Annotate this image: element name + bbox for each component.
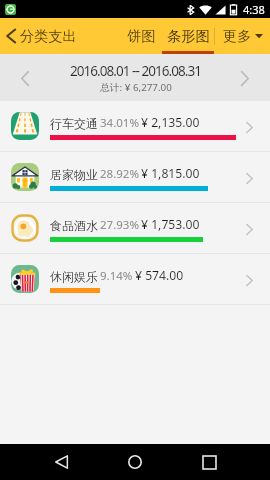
staticText: 9.14% [100,268,133,284]
staticText: 28.92% [100,166,139,182]
staticText: 行车交通 [50,116,98,131]
staticText: 2016.08.01 -- 2016.08.31 [70,62,201,80]
button[interactable]: Back [46,447,76,477]
staticText: 34.01% [100,115,139,131]
button[interactable]: 居家物业 [0,152,270,203]
button[interactable]: 休闲娱乐 [0,254,270,305]
button[interactable]: Previous period [8,61,42,95]
button[interactable]: 食品酒水 [0,203,270,254]
staticText: 更多 [223,27,252,45]
button[interactable]: Recent apps [194,447,224,477]
button[interactable]: 饼图 [122,21,161,51]
staticText: 条形图 [167,27,210,45]
staticText: 饼图 [127,27,156,45]
staticText: 27.93% [100,217,139,233]
staticText: 分类支出 [20,27,77,45]
staticText: 4:38 [243,2,265,17]
button[interactable]: Next period [228,61,262,95]
button[interactable]: 条形图 [161,21,214,51]
staticText: ¥ 1,815.00 [141,165,200,182]
staticText: 休闲娱乐 [50,269,98,284]
staticText: ¥ 2,135.00 [141,114,200,131]
staticText: ¥ 1,753.00 [141,216,200,233]
staticText: 总计: ¥ 6,277.00 [100,81,172,94]
staticText: 食品酒水 [50,218,98,233]
button[interactable]: 行车交通 [0,101,270,152]
button[interactable]: 分类支出 [0,21,83,51]
staticText: ¥ 574.00 [135,267,184,284]
button[interactable]: 更多 [215,21,263,51]
staticText: 居家物业 [50,167,98,182]
button[interactable]: Home [120,447,150,477]
